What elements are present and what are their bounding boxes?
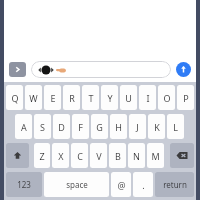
button[interactable]: Backspace — [170, 143, 194, 168]
staticText: H — [115, 121, 122, 133]
button[interactable]: I — [139, 85, 156, 110]
staticText: X — [58, 150, 64, 162]
staticText: N — [133, 150, 140, 162]
button[interactable]: U — [120, 85, 137, 110]
staticText: C — [77, 150, 83, 162]
staticText: space — [66, 179, 88, 190]
staticText: Y — [107, 92, 113, 104]
staticText: D — [58, 121, 65, 133]
button[interactable]: M — [147, 143, 164, 168]
staticText: I — [146, 92, 150, 104]
staticText: E — [50, 92, 56, 104]
staticText: A — [21, 121, 27, 133]
staticText: V — [96, 150, 102, 162]
staticText: F — [78, 121, 83, 133]
button[interactable]: return — [155, 172, 194, 197]
button[interactable]: K — [148, 114, 165, 139]
button[interactable]: Expand apps — [9, 62, 26, 77]
staticText: B — [115, 150, 121, 162]
button[interactable]: G — [91, 114, 108, 139]
staticText: Q — [11, 92, 19, 104]
staticText: return — [163, 179, 187, 190]
staticText: W — [29, 92, 38, 104]
button[interactable]: F — [72, 114, 89, 139]
staticText: J — [136, 121, 139, 133]
staticText: G — [96, 121, 103, 133]
button[interactable]: R — [63, 85, 80, 110]
button[interactable]: space — [44, 172, 109, 197]
button[interactable]: Z — [34, 143, 50, 168]
button[interactable]: Shift — [6, 143, 29, 168]
button[interactable]: H — [110, 114, 127, 139]
staticText: R — [69, 92, 75, 104]
button[interactable] — [31, 61, 171, 78]
button[interactable]: . — [133, 172, 153, 197]
button[interactable]: Q — [6, 85, 23, 110]
button[interactable]: E — [44, 85, 61, 110]
staticText: 123 — [17, 179, 31, 190]
staticText: O — [163, 92, 171, 104]
staticText: S — [40, 121, 45, 133]
button[interactable]: J — [129, 114, 146, 139]
button[interactable]: C — [71, 143, 88, 168]
button[interactable]: N — [128, 143, 145, 168]
button[interactable]: Send — [176, 62, 191, 77]
staticText: L — [173, 121, 178, 133]
button[interactable]: T — [82, 85, 99, 110]
staticText: Z — [39, 150, 45, 162]
button[interactable]: L — [167, 114, 184, 139]
button[interactable]: 123 — [6, 172, 42, 197]
button[interactable]: P — [177, 85, 194, 110]
button[interactable]: A — [15, 114, 32, 139]
staticText: U — [125, 92, 132, 104]
staticText: P — [183, 92, 189, 104]
staticText: K — [154, 121, 160, 133]
button[interactable]: S — [34, 114, 51, 139]
button[interactable]: Y — [101, 85, 118, 110]
staticText: . — [142, 179, 145, 191]
staticText: @ — [117, 179, 126, 191]
button[interactable]: @ — [111, 172, 131, 197]
button[interactable]: D — [53, 114, 70, 139]
button[interactable]: O — [158, 85, 175, 110]
button[interactable]: X — [52, 143, 69, 168]
button[interactable]: W — [25, 85, 42, 110]
button[interactable]: B — [109, 143, 126, 168]
staticText: T — [88, 92, 94, 104]
staticText: M — [151, 150, 160, 162]
button[interactable]: V — [90, 143, 107, 168]
